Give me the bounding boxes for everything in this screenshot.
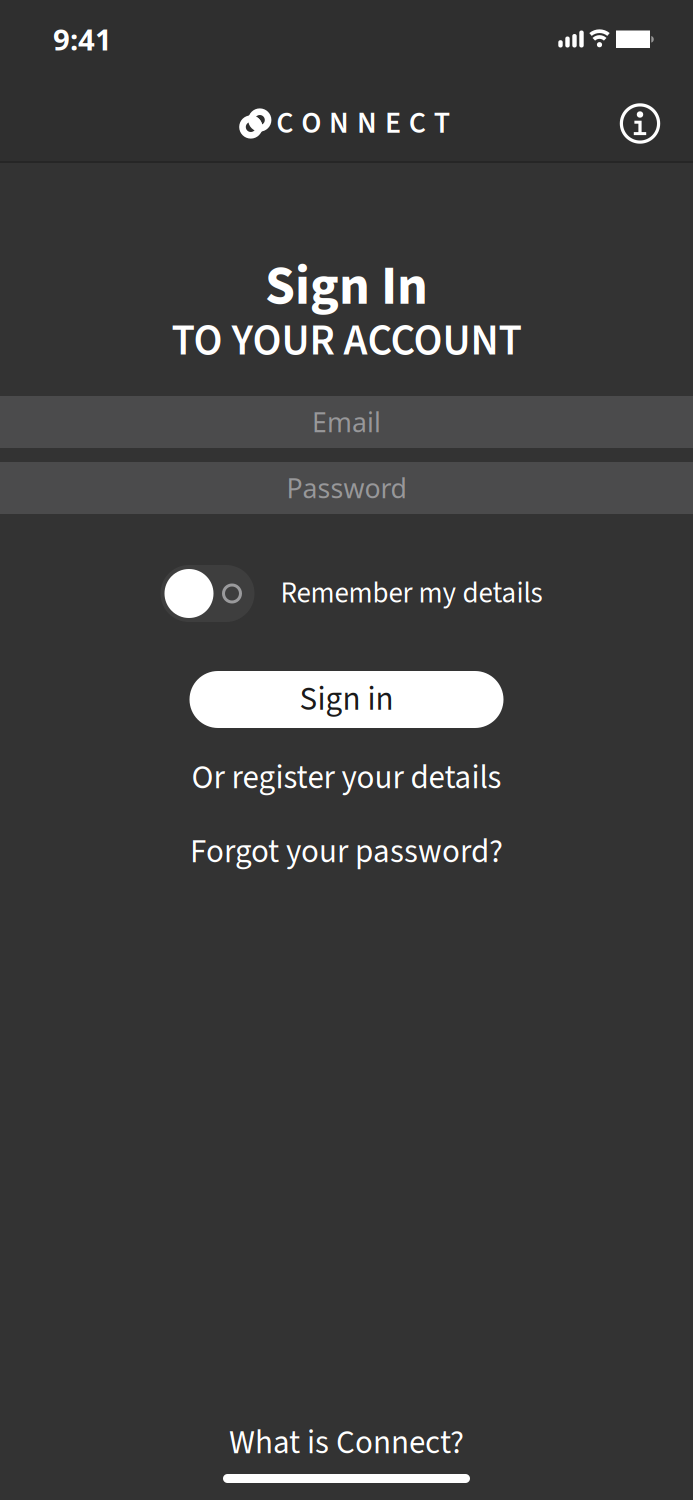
button[interactable]: What is Connect? <box>229 1421 464 1465</box>
staticText: Remember my details <box>280 573 542 614</box>
staticText: What is Connect? <box>229 1419 464 1466</box>
staticText: N <box>357 102 377 145</box>
button[interactable]: Forgot your password? <box>190 830 503 874</box>
button[interactable]: Or register your details <box>191 756 501 800</box>
staticText: 9:41 <box>53 19 112 58</box>
button[interactable]: Email <box>0 396 693 448</box>
button[interactable]: Password <box>0 462 693 514</box>
staticText: Sign In <box>265 249 428 325</box>
button[interactable]: Remember my details <box>155 565 537 622</box>
staticText: TO YOUR ACCOUNT <box>171 310 521 372</box>
staticText: Or register your details <box>191 754 501 801</box>
button[interactable]: Info <box>619 102 661 144</box>
button[interactable]: Sign in <box>189 671 503 728</box>
staticText: Password <box>286 470 406 506</box>
staticText: Email <box>312 404 381 440</box>
staticText: Sign in <box>299 676 393 723</box>
staticText: E <box>385 102 401 145</box>
staticText: N <box>329 102 349 145</box>
staticText: O <box>301 102 321 145</box>
staticText: T <box>434 102 450 145</box>
staticText: Forgot your password? <box>190 828 503 875</box>
staticText: C <box>409 102 426 145</box>
staticText: C <box>276 102 293 145</box>
